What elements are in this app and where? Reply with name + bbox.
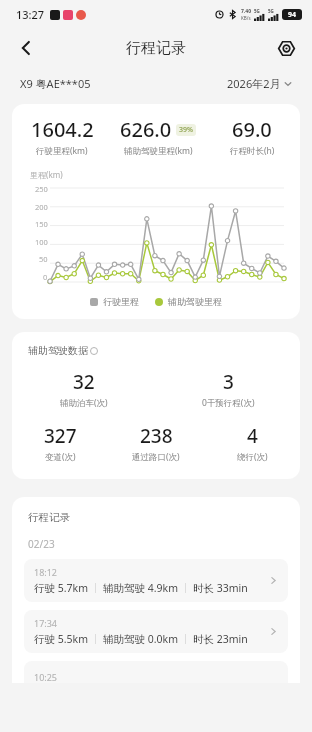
staticText: 里程(km): [30, 169, 63, 180]
button[interactable]: 18:12: [24, 559, 288, 602]
staticText: 626.0: [120, 116, 172, 143]
staticText: 200: [35, 202, 48, 212]
staticText: 绕行(次): [237, 451, 268, 463]
staticText: 69.0: [232, 116, 272, 143]
staticText: 行驶里程(km): [36, 145, 88, 157]
staticText: 3: [223, 369, 234, 395]
staticText: 辅助驾驶数据: [28, 344, 88, 357]
staticText: 辅助驾驶 0.0km: [103, 632, 178, 646]
button[interactable]: Settings: [270, 32, 302, 64]
staticText: 辅助驾驶里程(km): [124, 145, 193, 157]
button[interactable]: 17:34: [24, 610, 288, 653]
staticText: 时长 33min: [193, 581, 248, 595]
staticText: 94: [288, 10, 297, 20]
staticText: 02/23: [28, 537, 55, 551]
staticText: 1604.2: [31, 116, 94, 143]
staticText: 32: [73, 369, 95, 395]
staticText: 250: [35, 184, 48, 194]
staticText: 辅助驾驶里程: [168, 296, 222, 307]
button[interactable]: Back: [8, 30, 44, 66]
staticText: 时长 23min: [193, 632, 248, 646]
staticText: 0干预行程(次): [202, 397, 255, 409]
staticText: 100: [35, 237, 48, 247]
staticText: 辅助泊车(次): [60, 397, 108, 409]
staticText: 327: [44, 423, 77, 449]
staticText: 变道(次): [45, 451, 76, 463]
staticText: X9 粤AE***05: [20, 76, 91, 91]
staticText: 7.40: [241, 8, 251, 15]
staticText: 238: [140, 423, 173, 449]
staticText: KB/s: [241, 15, 251, 21]
staticText: 39%: [179, 125, 193, 135]
button[interactable]: 10:25: [24, 661, 288, 683]
staticText: 行驶 5.5km: [34, 632, 88, 646]
staticText: 10:25: [34, 671, 58, 683]
staticText: 17:34: [34, 617, 58, 629]
staticText: 18:12: [34, 566, 58, 578]
button[interactable]: 2026年2月: [227, 76, 292, 91]
staticText: 辅助驾驶 4.9km: [103, 581, 178, 595]
staticText: 150: [35, 219, 48, 229]
staticText: 行程记录: [126, 39, 186, 58]
staticText: 4: [247, 423, 258, 449]
staticText: 通过路口(次): [132, 451, 180, 463]
staticText: 5G: [268, 8, 274, 14]
staticText: 50: [39, 254, 48, 264]
staticText: 2026年2月: [227, 76, 281, 91]
staticText: 5G: [254, 8, 260, 14]
staticText: 行程时长(h): [230, 145, 275, 157]
staticText: 行程记录: [28, 511, 70, 524]
staticText: 13:27: [16, 7, 45, 22]
staticText: 行驶 5.7km: [34, 581, 88, 595]
staticText: 行驶里程: [103, 296, 139, 307]
staticText: 0: [43, 272, 48, 282]
